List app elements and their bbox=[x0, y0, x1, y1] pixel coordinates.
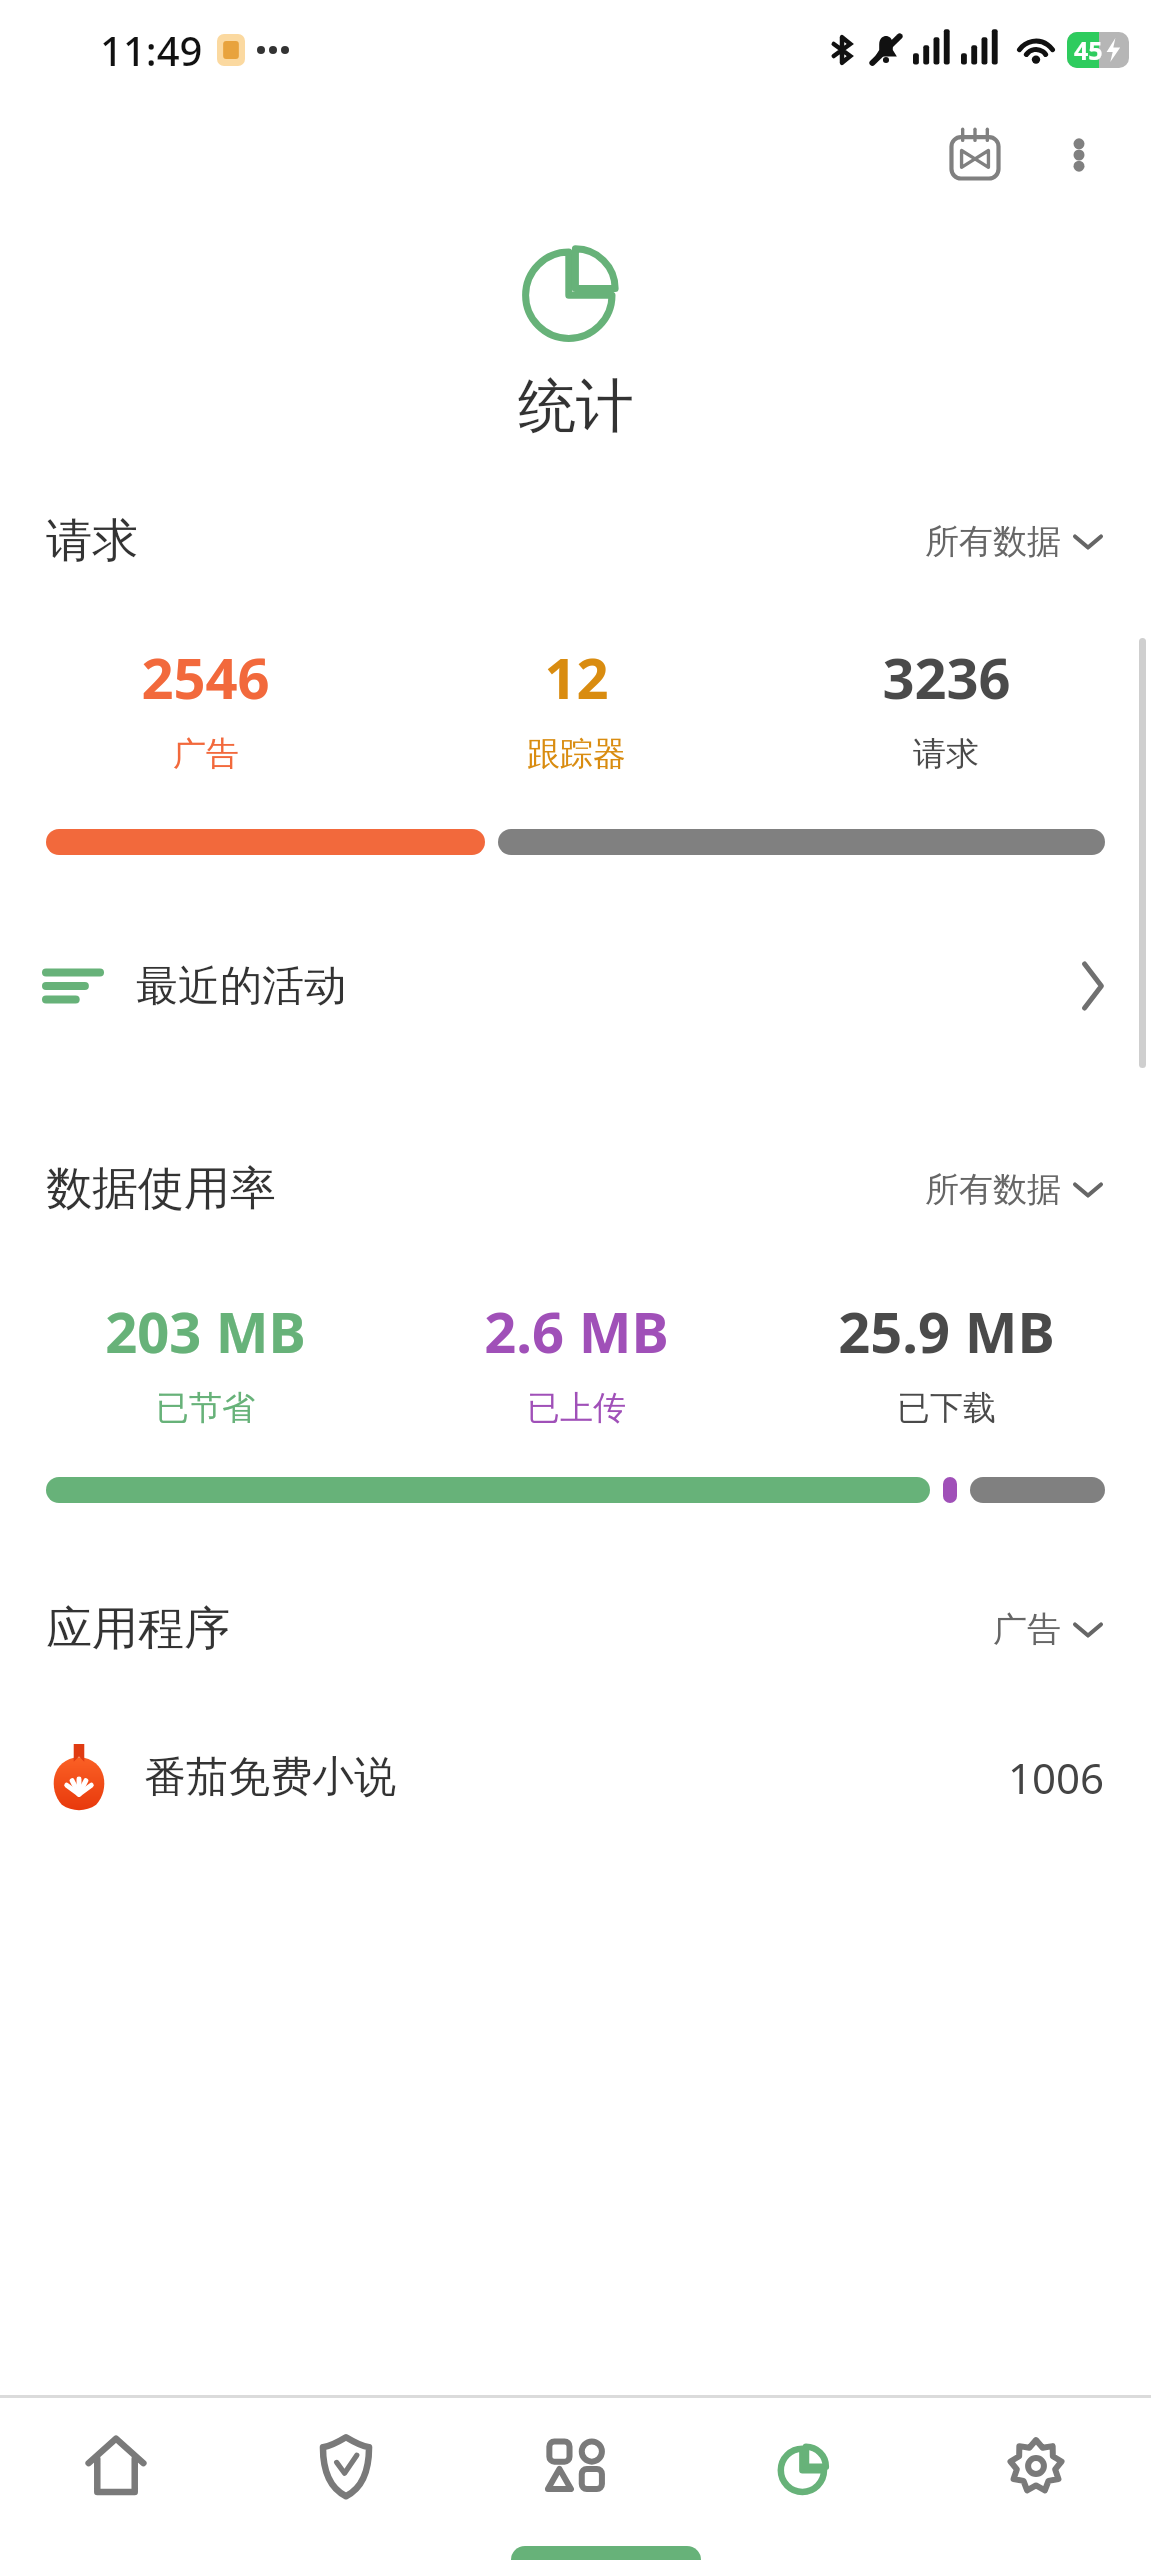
staticText: 12 bbox=[544, 639, 609, 715]
button[interactable]: Protection bbox=[231, 2408, 461, 2560]
button[interactable]: 所有数据 bbox=[921, 1162, 1105, 1217]
staticText: 广告 bbox=[173, 733, 239, 775]
button[interactable]: 25.9 MB bbox=[761, 1293, 1131, 1429]
button[interactable]: 12 bbox=[391, 639, 761, 775]
button[interactable]: Home bbox=[0, 2408, 231, 2560]
button[interactable]: Apps bbox=[461, 2408, 691, 2560]
staticText: 25.9 MB bbox=[838, 1293, 1055, 1369]
button[interactable]: 2546 bbox=[20, 639, 391, 775]
button[interactable]: Settings bbox=[921, 2408, 1151, 2560]
button[interactable]: 番茄免费小说 bbox=[0, 1717, 1151, 1837]
staticText: 番茄免费小说 bbox=[144, 1751, 396, 1804]
staticText: 3236 bbox=[882, 639, 1011, 715]
staticText: 请求 bbox=[46, 512, 138, 570]
staticText: 数据使用率 bbox=[46, 1160, 276, 1218]
staticText: 11:49 bbox=[100, 23, 203, 77]
staticText: 2.6 MB bbox=[484, 1293, 669, 1369]
staticText: 跟踪器 bbox=[527, 733, 626, 775]
button[interactable]: 所有数据 bbox=[921, 514, 1105, 569]
staticText: 1006 bbox=[1008, 1749, 1105, 1806]
staticText: 请求 bbox=[913, 733, 979, 775]
staticText: 统计 bbox=[518, 370, 634, 443]
staticText: 45 bbox=[1074, 33, 1103, 67]
staticText: 203 MB bbox=[105, 1293, 306, 1369]
staticText: 2546 bbox=[141, 639, 270, 715]
button[interactable]: 3236 bbox=[761, 639, 1131, 775]
staticText: 所有数据 bbox=[925, 1168, 1061, 1211]
button[interactable]: 203 MB bbox=[20, 1293, 391, 1429]
staticText: 已上传 bbox=[527, 1387, 626, 1429]
staticText: 应用程序 bbox=[46, 1600, 230, 1658]
button[interactable]: 广告 bbox=[989, 1602, 1105, 1657]
staticText: 所有数据 bbox=[925, 520, 1061, 563]
button[interactable]: More options bbox=[1031, 107, 1127, 203]
button[interactable]: Calendar period bbox=[927, 107, 1023, 203]
staticText: 已下载 bbox=[897, 1387, 996, 1429]
staticText: 最近的活动 bbox=[136, 960, 346, 1013]
staticText: 已节省 bbox=[156, 1387, 255, 1429]
button[interactable]: 2.6 MB bbox=[391, 1293, 761, 1429]
button[interactable]: Statistics bbox=[691, 2408, 921, 2560]
staticText: 广告 bbox=[993, 1608, 1061, 1651]
button[interactable]: 最近的活动 bbox=[0, 931, 1151, 1041]
